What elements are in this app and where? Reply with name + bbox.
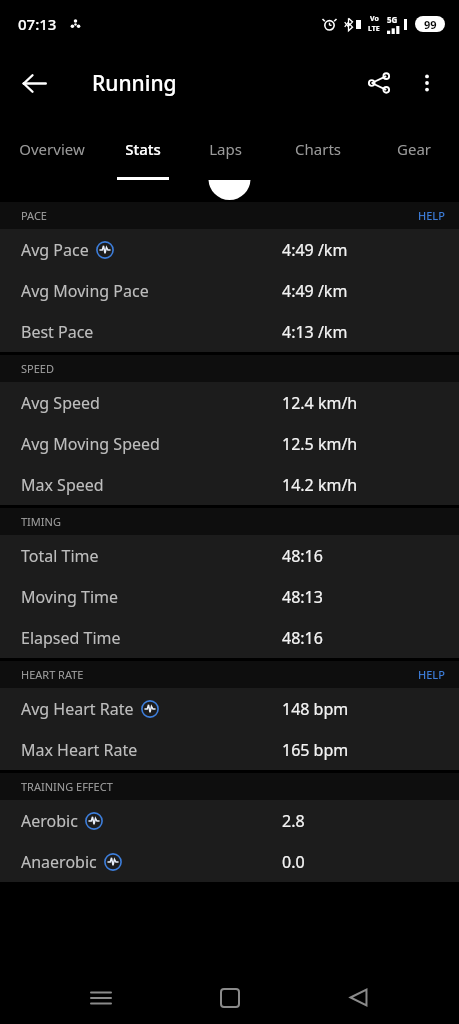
staticText: HELP bbox=[418, 667, 445, 682]
staticText: 4:49 /km bbox=[282, 239, 348, 261]
button[interactable]: Elapsed Time bbox=[0, 617, 459, 658]
staticText: 48:13 bbox=[282, 586, 323, 608]
staticText: 2.8 bbox=[282, 810, 305, 832]
staticText: TIMING bbox=[21, 514, 61, 529]
button[interactable]: Gear bbox=[368, 118, 459, 180]
staticText: Moving Time bbox=[21, 586, 119, 608]
staticText: Vo bbox=[370, 14, 379, 24]
staticText: 4:49 /km bbox=[282, 280, 348, 302]
staticText: HELP bbox=[418, 208, 445, 223]
button[interactable]: Share bbox=[355, 59, 403, 107]
button[interactable]: Avg Moving Pace bbox=[0, 270, 459, 311]
staticText: Charts bbox=[295, 139, 341, 159]
staticText: Gear bbox=[397, 139, 431, 159]
staticText: 99 bbox=[424, 17, 437, 32]
staticText: Aerobic bbox=[21, 810, 78, 832]
button[interactable]: HELP bbox=[418, 661, 445, 688]
button[interactable]: Back bbox=[330, 971, 386, 1024]
staticText: 165 bpm bbox=[282, 739, 349, 761]
staticText: 12.5 km/h bbox=[282, 433, 358, 455]
staticText: TRAINING EFFECT bbox=[21, 779, 113, 794]
staticText: Avg Moving Speed bbox=[21, 433, 160, 455]
button[interactable]: Max Speed bbox=[0, 464, 459, 505]
button[interactable]: Overview bbox=[0, 118, 103, 180]
button[interactable]: Max Heart Rate bbox=[0, 729, 459, 770]
button[interactable]: Charts bbox=[268, 118, 368, 180]
staticText: Max Heart Rate bbox=[21, 739, 138, 761]
button[interactable]: Aerobic bbox=[0, 800, 459, 841]
staticText: SPEED bbox=[21, 361, 54, 376]
button[interactable]: Back bbox=[10, 59, 58, 107]
button[interactable]: HELP bbox=[418, 202, 445, 229]
button[interactable]: Avg Pace bbox=[0, 229, 459, 270]
staticText: Best Pace bbox=[21, 321, 94, 343]
button[interactable]: Best Pace bbox=[0, 311, 459, 352]
staticText: 5G bbox=[387, 14, 398, 25]
staticText: Laps bbox=[209, 139, 242, 159]
button[interactable]: Total Time bbox=[0, 535, 459, 576]
button[interactable]: Anaerobic bbox=[0, 841, 459, 882]
staticText: Total Time bbox=[21, 545, 99, 567]
button[interactable]: Stats bbox=[103, 118, 182, 180]
staticText: Avg Moving Pace bbox=[21, 280, 149, 302]
staticText: Avg Heart Rate bbox=[21, 698, 134, 720]
button[interactable]: Avg Moving Speed bbox=[0, 423, 459, 464]
staticText: Avg Speed bbox=[21, 392, 100, 414]
staticText: LTE bbox=[368, 24, 380, 34]
staticText: PACE bbox=[21, 208, 47, 223]
staticText: 4:13 /km bbox=[282, 321, 348, 343]
button[interactable]: Laps bbox=[182, 118, 268, 180]
button[interactable]: Avg Heart Rate bbox=[0, 688, 459, 729]
staticText: Stats bbox=[125, 139, 161, 159]
button[interactable]: Recent apps bbox=[73, 971, 129, 1024]
staticText: 48:16 bbox=[282, 545, 323, 567]
staticText: Max Speed bbox=[21, 474, 104, 496]
staticText: 0.0 bbox=[282, 851, 305, 873]
staticText: Elapsed Time bbox=[21, 627, 121, 649]
button[interactable]: Avg Speed bbox=[0, 382, 459, 423]
staticText: Avg Pace bbox=[21, 239, 89, 261]
staticText: 148 bpm bbox=[282, 698, 349, 720]
button[interactable]: Moving Time bbox=[0, 576, 459, 617]
staticText: Running bbox=[92, 69, 177, 98]
staticText: 12.4 km/h bbox=[282, 392, 358, 414]
staticText: HEART RATE bbox=[21, 667, 84, 682]
button[interactable]: Home bbox=[202, 971, 258, 1024]
button[interactable]: More options bbox=[403, 59, 451, 107]
staticText: Anaerobic bbox=[21, 851, 97, 873]
staticText: 14.2 km/h bbox=[282, 474, 358, 496]
staticText: 07:13 bbox=[18, 14, 57, 34]
staticText: Overview bbox=[19, 139, 85, 159]
staticText: 48:16 bbox=[282, 627, 323, 649]
